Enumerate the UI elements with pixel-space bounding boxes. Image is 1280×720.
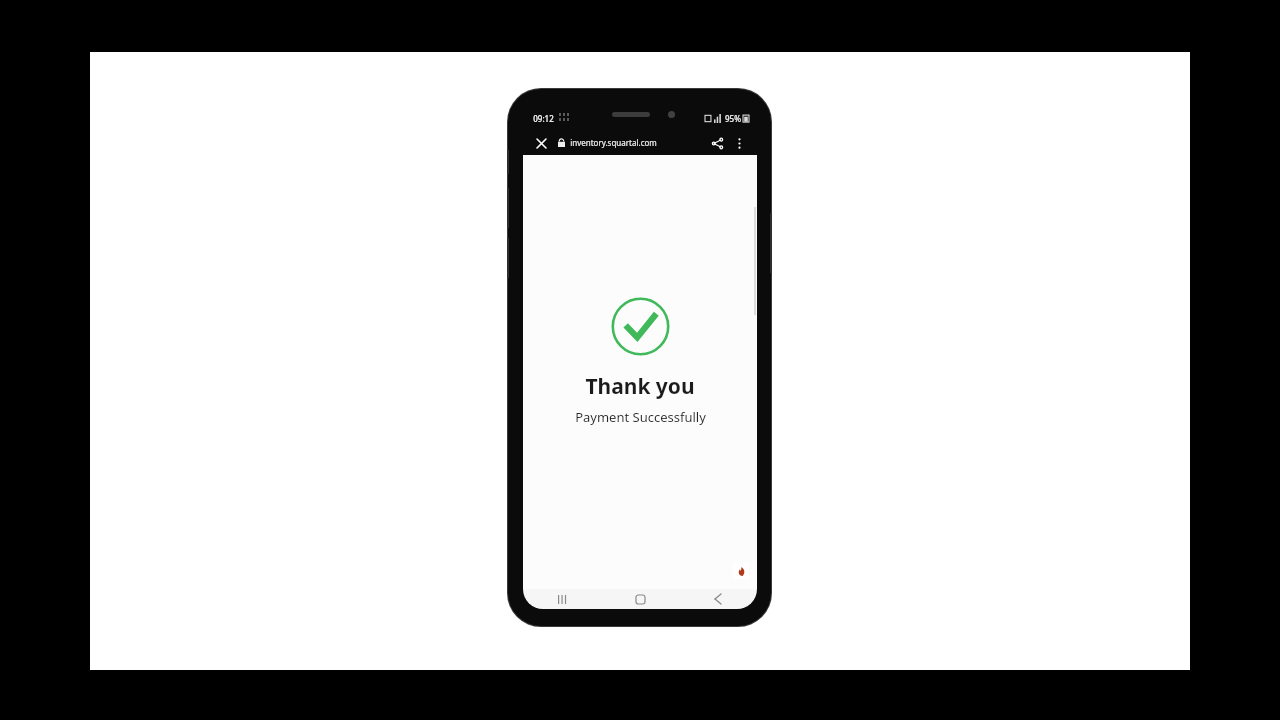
staticText: Thank you (585, 372, 695, 401)
button[interactable]: Home (601, 589, 679, 609)
staticText: 95% (725, 113, 741, 124)
staticText: 09:12 (533, 113, 554, 124)
button[interactable]: More options (730, 134, 748, 152)
button[interactable]: Hot (733, 563, 749, 579)
staticText: inventory.squartal.com (570, 137, 657, 148)
button[interactable]: Recents (523, 589, 601, 609)
button[interactable]: Close (532, 134, 550, 152)
staticText: Payment Successfully (575, 408, 706, 426)
button[interactable]: Back (679, 589, 757, 609)
button[interactable]: Share (708, 134, 726, 152)
